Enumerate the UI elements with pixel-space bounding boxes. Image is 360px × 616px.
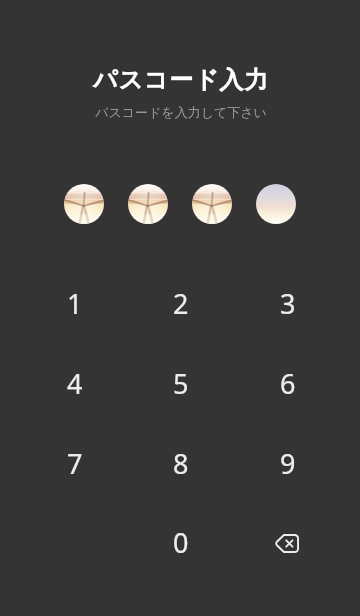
button[interactable]: 3 [251,266,325,340]
staticText: 0 [173,524,189,561]
staticText: 7 [67,445,83,482]
button[interactable]: 0 [144,505,218,579]
button[interactable]: 8 [144,426,218,500]
button[interactable]: 4 [38,346,112,420]
button[interactable]: 6 [251,346,325,420]
staticText: 4 [67,365,83,402]
button[interactable]: 7 [38,426,112,500]
staticText: パスコード入力 [93,65,269,95]
staticText: パスコードを入力して下さい [95,104,267,120]
button[interactable]: 1 [38,266,112,340]
staticText: 3 [280,285,296,322]
staticText: 5 [173,365,189,402]
staticText: 8 [173,445,189,482]
button[interactable]: Delete [251,505,325,579]
button[interactable]: 2 [144,266,218,340]
staticText: 9 [280,445,296,482]
staticText: 6 [280,365,296,402]
staticText: 2 [173,285,189,322]
button[interactable]: 9 [251,426,325,500]
staticText: 1 [67,285,83,322]
button[interactable]: 5 [144,346,218,420]
